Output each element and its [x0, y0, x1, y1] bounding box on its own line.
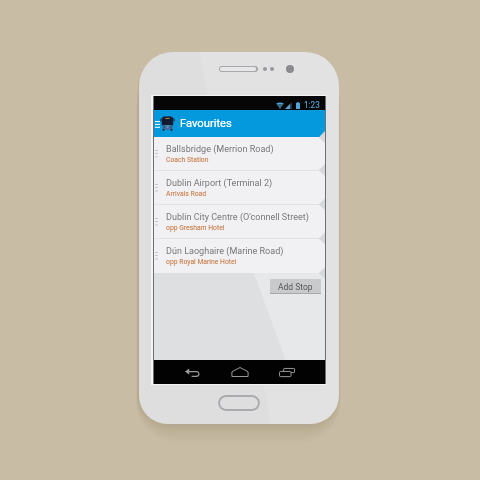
button[interactable]: Dublin Airport (Terminal 2): [154, 171, 325, 205]
staticText: opp Royal Marine Hotel: [166, 258, 237, 266]
staticText: Favourites: [180, 117, 232, 130]
button[interactable]: Add Stop: [270, 279, 321, 294]
staticText: Dublin City Centre (O'connell Street): [166, 212, 309, 223]
button[interactable]: Home: [216, 360, 263, 384]
button[interactable]: Dún Laoghaire (Marine Road): [154, 239, 325, 273]
staticText: Add Stop: [278, 282, 313, 292]
staticText: Dún Laoghaire (Marine Road): [166, 246, 284, 257]
staticText: Dublin Airport (Terminal 2): [166, 178, 273, 189]
staticText: Ballsbridge (Merrion Road): [166, 144, 274, 155]
staticText: Arrivals Road: [166, 190, 207, 198]
staticText: opp Gresham Hotel: [166, 224, 225, 232]
staticText: Coach Station: [166, 156, 209, 164]
button[interactable]: Dublin City Centre (O'connell Street): [154, 205, 325, 239]
button[interactable]: Home button: [218, 395, 260, 411]
button[interactable]: Navigation menu: [155, 121, 160, 128]
button[interactable]: Back: [169, 360, 216, 384]
button[interactable]: Recent apps: [263, 360, 310, 384]
staticText: 1:23: [304, 100, 320, 110]
button[interactable]: Ballsbridge (Merrion Road): [154, 137, 325, 171]
